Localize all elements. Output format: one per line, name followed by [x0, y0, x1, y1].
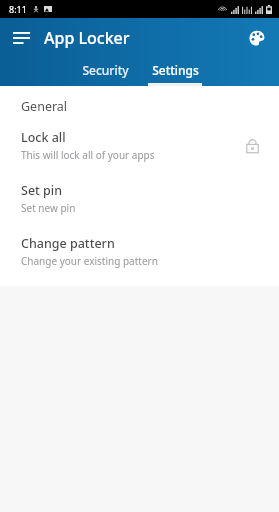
button[interactable]: Change pattern: [0, 233, 279, 270]
staticText: 8:11: [9, 3, 27, 15]
button[interactable]: Settings: [140, 58, 210, 86]
staticText: Change pattern: [21, 235, 115, 252]
button[interactable]: Lock all: [0, 127, 279, 164]
staticText: Settings: [152, 62, 199, 78]
staticText: Set new pin: [21, 201, 76, 215]
staticText: Security: [82, 62, 129, 78]
button[interactable]: Open navigation drawer: [6, 23, 36, 53]
other: Lock all apps: [241, 135, 263, 157]
staticText: General: [21, 98, 68, 115]
staticText: Lock all: [21, 129, 66, 146]
staticText: Change your existing pattern: [21, 254, 158, 268]
button[interactable]: Security: [70, 58, 140, 86]
staticText: App Locker: [44, 27, 130, 49]
button[interactable]: Change theme: [243, 24, 271, 52]
staticText: This will lock all of your apps: [21, 148, 155, 162]
button[interactable]: Set pin: [0, 180, 279, 217]
staticText: Set pin: [21, 182, 63, 199]
